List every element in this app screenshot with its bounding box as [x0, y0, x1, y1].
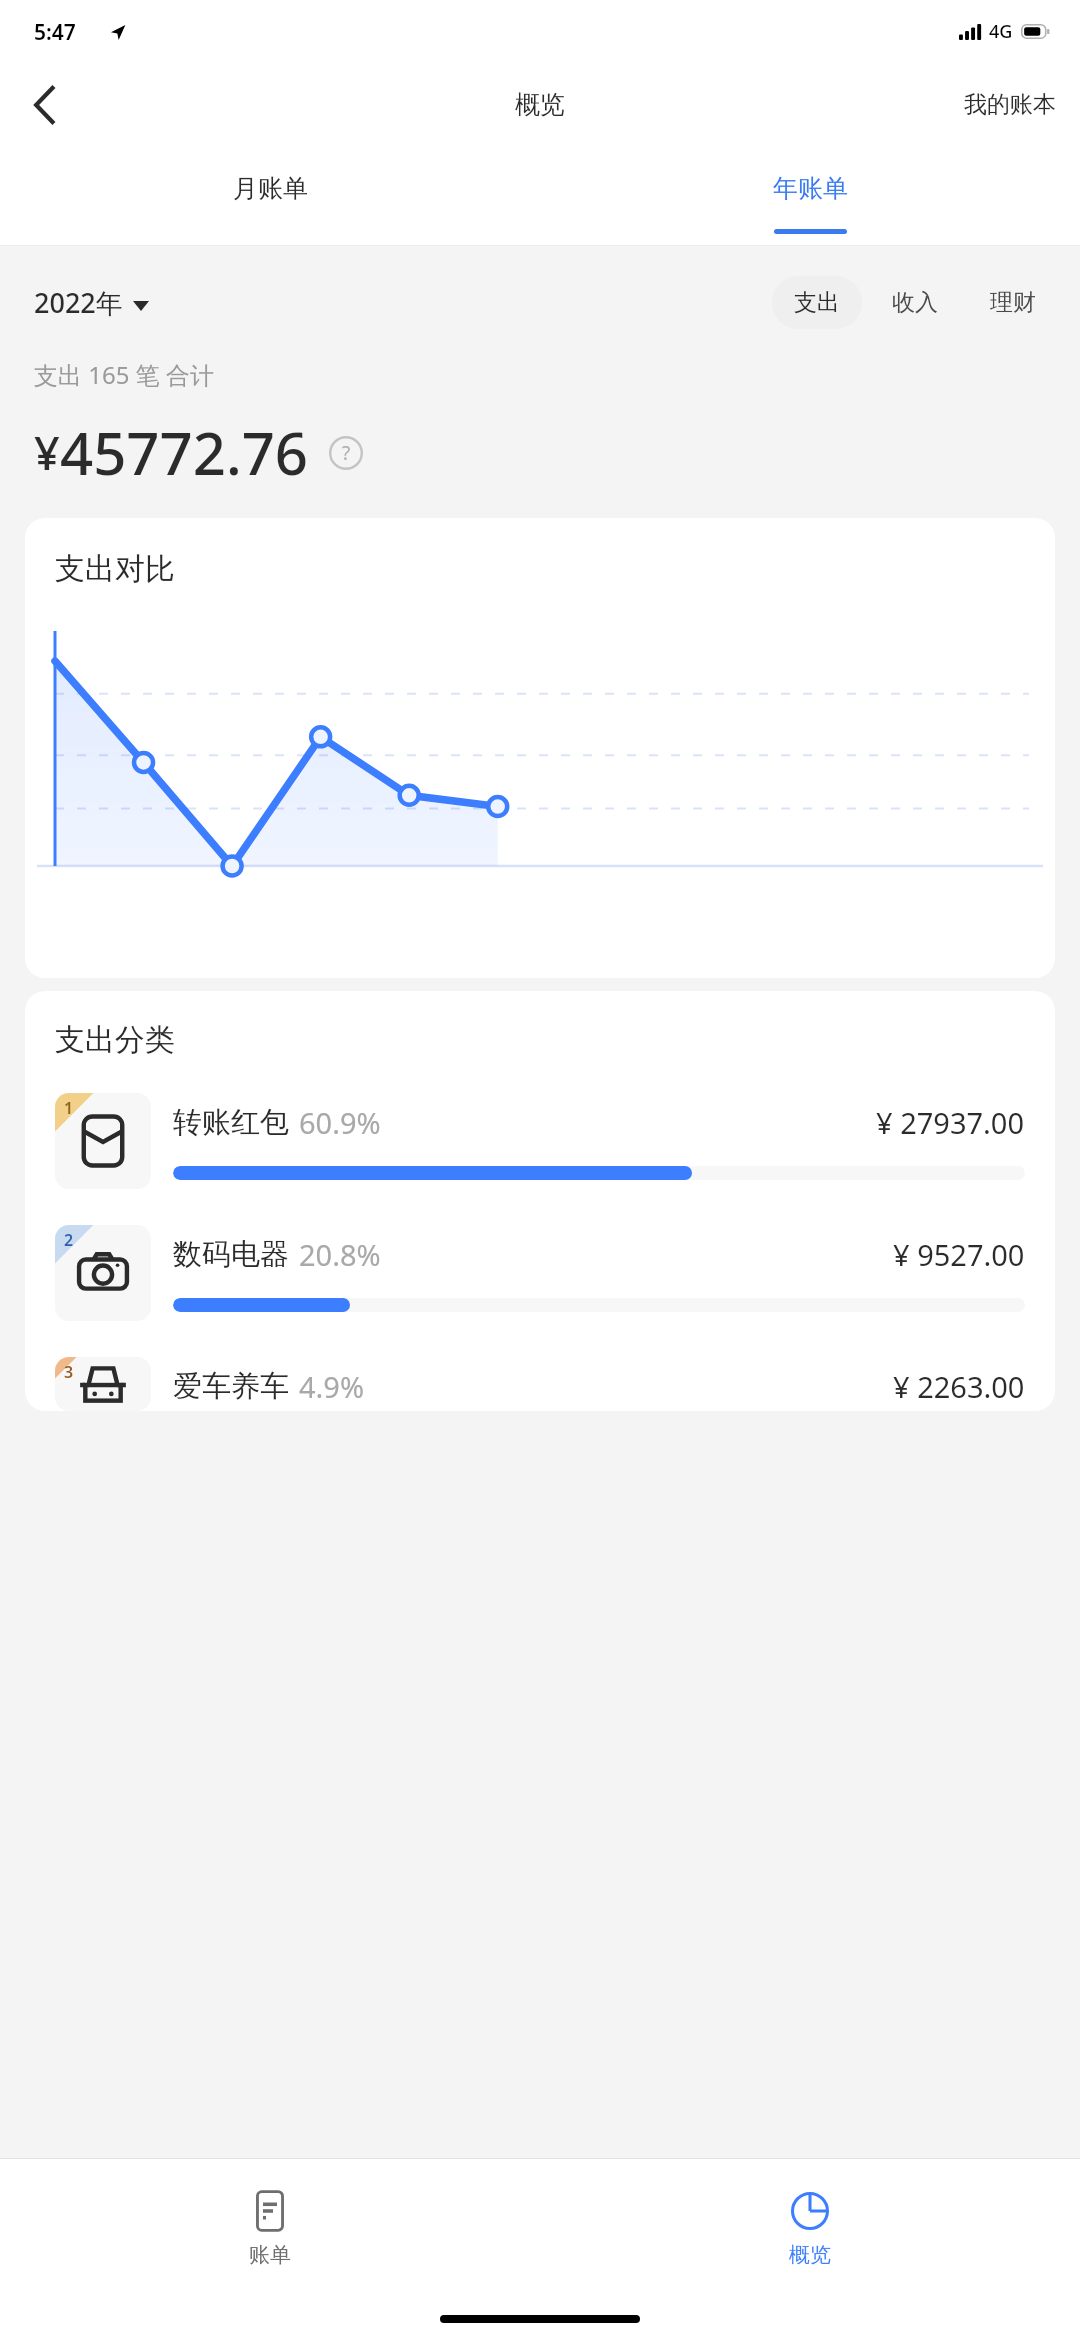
staticText: 概览	[789, 2242, 831, 2268]
staticText: ¥ 9527.00	[893, 1235, 1025, 1274]
staticText: 月账单	[233, 173, 308, 204]
staticText: 概览	[515, 89, 565, 120]
staticText: 5:47	[34, 18, 76, 47]
staticText: 45772.76	[60, 413, 309, 492]
button[interactable]: 月账单	[0, 146, 540, 246]
staticText: 2022年	[34, 284, 123, 321]
staticText: 1	[64, 1097, 74, 1119]
staticText: 转账红包	[173, 1104, 289, 1141]
staticText: 2	[64, 1229, 74, 1251]
button[interactable]: 支出	[772, 276, 862, 329]
staticText: 我的账本	[964, 90, 1056, 119]
staticText: 年账单	[773, 173, 848, 204]
staticText: 支出	[794, 288, 840, 317]
staticText: 数码电器	[173, 1236, 289, 1273]
staticText: ¥ 2263.00	[893, 1367, 1025, 1406]
staticText: 理财	[990, 288, 1036, 317]
staticText: 3	[64, 1361, 74, 1383]
button[interactable]: 理财	[968, 276, 1058, 329]
staticText: 20.8%	[299, 1235, 381, 1274]
staticText: 60.9%	[299, 1103, 381, 1142]
staticText: 支出 165 笔 合计	[34, 358, 214, 391]
button[interactable]: 概览	[540, 2159, 1080, 2299]
staticText: 账单	[249, 2242, 291, 2268]
button[interactable]: 我的账本	[940, 76, 1080, 133]
staticText: ¥	[34, 422, 60, 483]
staticText: ?	[342, 440, 351, 466]
button[interactable]: Back	[10, 71, 78, 139]
button[interactable]: 2	[25, 1225, 1055, 1333]
button[interactable]: 1	[25, 1093, 1055, 1201]
button[interactable]: 3	[25, 1357, 1055, 1411]
staticText: 支出分类	[55, 1021, 175, 1059]
button[interactable]: 2022年	[22, 274, 161, 331]
button[interactable]: 收入	[870, 276, 960, 329]
staticText: ¥ 27937.00	[876, 1103, 1025, 1142]
button[interactable]: 年账单	[540, 146, 1080, 246]
button[interactable]: Help	[325, 432, 367, 474]
button[interactable]: 账单	[0, 2159, 540, 2299]
staticText: 4G	[989, 19, 1013, 44]
staticText: 4.9%	[299, 1367, 365, 1406]
staticText: 支出对比	[55, 550, 175, 588]
staticText: 爱车养车	[173, 1368, 289, 1405]
staticText: 收入	[892, 288, 938, 317]
